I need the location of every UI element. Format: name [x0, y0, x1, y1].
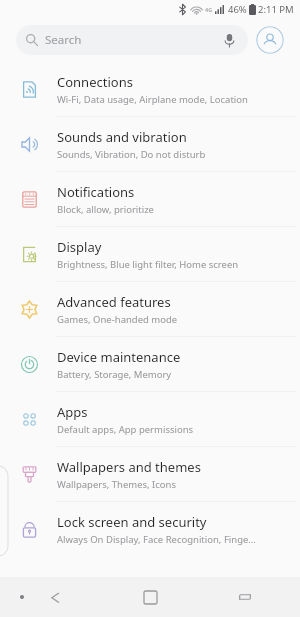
button[interactable]: Search: [16, 25, 248, 55]
button[interactable]: Lock screen and security: [0, 502, 300, 556]
staticText: Advanced features: [57, 293, 171, 311]
staticText: Device maintenance: [57, 348, 181, 366]
staticText: Notifications: [57, 183, 135, 201]
button[interactable]: Account: [256, 26, 284, 54]
staticText: Connections: [57, 73, 133, 91]
staticText: Sounds, Vibration, Do not disturb: [57, 148, 206, 161]
staticText: 2:11 PM: [258, 3, 294, 16]
button[interactable]: Connections: [0, 62, 300, 116]
staticText: Default apps, App permissions: [57, 423, 194, 436]
button[interactable]: Apps: [0, 392, 300, 446]
staticText: Apps: [57, 403, 88, 421]
button[interactable]: Recents: [228, 580, 262, 614]
button[interactable]: Notifications: [0, 172, 300, 226]
button[interactable]: Display: [0, 227, 300, 281]
staticText: Battery, Storage, Memory: [57, 368, 172, 381]
button[interactable]: Show keyboard: [14, 589, 30, 605]
staticText: 4G: [205, 6, 213, 13]
button[interactable]: Home: [133, 580, 167, 614]
staticText: Games, One-handed mode: [57, 313, 178, 326]
button[interactable]: Wallpapers and themes: [0, 447, 300, 501]
staticText: Lock screen and security: [57, 513, 207, 531]
staticText: Always On Display, Face Recognition, Fin…: [57, 533, 256, 546]
staticText: Display: [57, 238, 102, 256]
staticText: Block, allow, prioritize: [57, 203, 154, 216]
staticText: Sounds and vibration: [57, 128, 187, 146]
button[interactable]: Device maintenance: [0, 337, 300, 391]
staticText: Search: [45, 32, 82, 48]
staticText: 46%: [228, 3, 247, 16]
button[interactable]: Sounds and vibration: [0, 117, 300, 171]
button[interactable]: Voice search: [220, 31, 238, 49]
staticText: Wi-Fi, Data usage, Airplane mode, Locati…: [57, 93, 248, 106]
staticText: Brightness, Blue light filter, Home scre…: [57, 258, 239, 271]
staticText: Wallpapers, Themes, Icons: [57, 478, 177, 491]
staticText: Wallpapers and themes: [57, 458, 201, 476]
button[interactable]: Advanced features: [0, 282, 300, 336]
button[interactable]: Back: [38, 580, 72, 614]
